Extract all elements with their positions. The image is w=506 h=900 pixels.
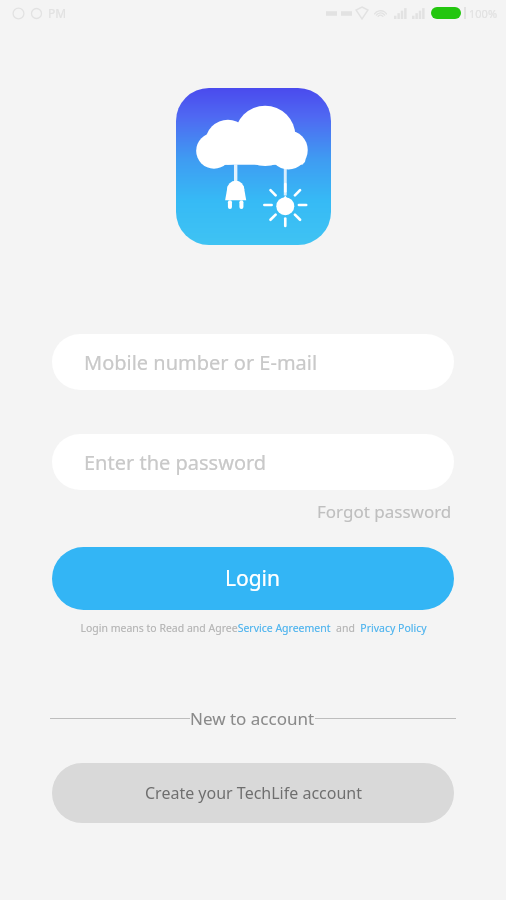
staticText: Enter the password [84,449,267,476]
staticText: Forgot password [317,500,452,523]
other: TechLife app icon [176,88,331,245]
staticText: Login means to Read and AgreeService Agr… [80,621,427,635]
staticText: New to account [190,707,315,730]
staticText: Login [225,564,281,593]
staticText: Create your TechLife account [145,782,362,804]
button[interactable]: Create your TechLife account [52,763,454,823]
button[interactable]: Forgot password [313,496,456,527]
button[interactable]: Login [52,547,454,610]
staticText: 100% [469,6,498,21]
button[interactable]: Enter the password [52,434,454,490]
staticText: PM [48,5,67,21]
staticText: Mobile number or E-mail [84,349,318,376]
button[interactable]: Mobile number or E-mail [52,334,454,390]
